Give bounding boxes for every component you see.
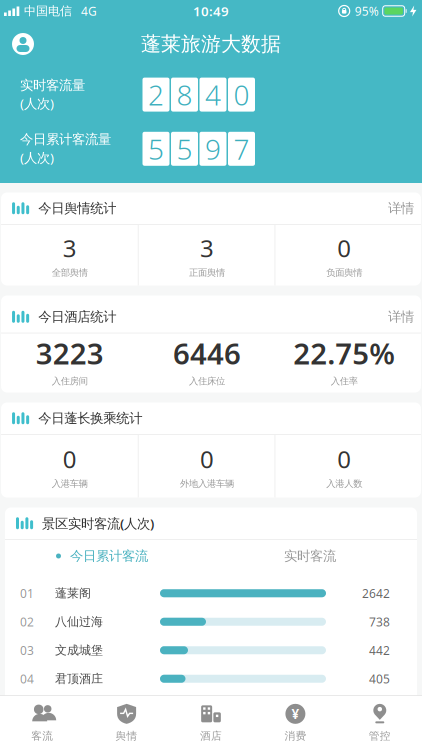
staticText: 4G xyxy=(81,3,97,19)
staticText: 0 xyxy=(63,443,77,475)
staticText: 中国电信 xyxy=(24,4,72,18)
staticText: 今日蓬长换乘统计 xyxy=(38,410,142,426)
staticText: 01 xyxy=(20,585,34,601)
staticText: 八仙过海 xyxy=(55,614,103,629)
staticText: 2642 xyxy=(362,585,390,601)
staticText: 今日累计客流 xyxy=(70,548,148,564)
staticText: 外地入港车辆 xyxy=(180,478,234,489)
staticText: 2 xyxy=(148,76,164,113)
staticText: 0 xyxy=(200,443,214,475)
staticText: 4 xyxy=(205,76,221,113)
staticText: 3 xyxy=(63,232,77,264)
staticText: 入住率 xyxy=(331,375,358,387)
staticText: 消费 xyxy=(284,729,306,742)
staticText: 酒店 xyxy=(200,729,222,742)
staticText: 实时客流 xyxy=(284,548,336,564)
staticText: 负面舆情 xyxy=(326,267,362,278)
staticText: 3223 xyxy=(36,333,104,372)
staticText: 22.75% xyxy=(293,333,395,372)
staticText: 文成城堡 xyxy=(55,643,103,658)
staticText: 正面舆情 xyxy=(189,267,225,278)
staticText: 6446 xyxy=(173,333,241,372)
staticText: 今日舆情统计 xyxy=(38,200,116,216)
staticText: 蓬莱阁 xyxy=(55,586,91,601)
staticText: 0 xyxy=(337,232,351,264)
staticText: 今日累计客流量 xyxy=(20,131,111,148)
staticText: 9 xyxy=(205,130,221,167)
staticText: 详情 xyxy=(388,309,414,325)
staticText: (人次) xyxy=(20,94,54,112)
staticText: 入港车辆 xyxy=(52,478,88,489)
staticText: 实时客流量 xyxy=(20,77,85,93)
staticText: 君顶酒庄 xyxy=(55,671,103,686)
staticText: 03 xyxy=(20,642,34,658)
button[interactable]: 详情 xyxy=(388,309,421,325)
staticText: 0 xyxy=(337,443,351,475)
staticText: 今日酒店统计 xyxy=(38,309,116,325)
staticText: 客流 xyxy=(31,729,53,742)
staticText: (人次) xyxy=(20,149,54,166)
button[interactable]: 管控 xyxy=(338,696,422,750)
staticText: 442 xyxy=(369,642,390,658)
staticText: 5 xyxy=(176,130,192,167)
staticText: ¥ xyxy=(291,705,299,723)
button[interactable]: 舆情 xyxy=(84,696,169,750)
staticText: 全部舆情 xyxy=(52,267,88,278)
staticText: 5 xyxy=(148,130,164,167)
staticText: 10:49 xyxy=(193,2,229,20)
staticText: 738 xyxy=(369,614,390,630)
staticText: 7 xyxy=(233,130,249,167)
staticText: 入住房间 xyxy=(52,375,88,387)
button[interactable]: 详情 xyxy=(388,200,421,216)
staticText: 0 xyxy=(233,76,249,113)
button[interactable]: 客流 xyxy=(0,696,84,750)
button[interactable]: 用户 xyxy=(12,33,34,55)
staticText: 04 xyxy=(20,671,34,687)
staticText: 蓬莱旅游大数据 xyxy=(141,32,281,56)
button[interactable]: 酒店 xyxy=(169,696,253,750)
button[interactable]: ¥ xyxy=(253,696,338,750)
staticText: 管控 xyxy=(369,729,391,742)
staticText: 详情 xyxy=(388,200,414,216)
staticText: 95% xyxy=(355,3,379,19)
staticText: 8 xyxy=(176,76,192,113)
staticText: 舆情 xyxy=(116,729,138,742)
staticText: 入住床位 xyxy=(189,375,225,387)
staticText: 02 xyxy=(20,614,34,630)
staticText: 景区实时客流(人次) xyxy=(42,514,154,532)
staticText: 入港人数 xyxy=(326,478,362,489)
staticText: 3 xyxy=(200,232,214,264)
staticText: 405 xyxy=(369,671,390,687)
